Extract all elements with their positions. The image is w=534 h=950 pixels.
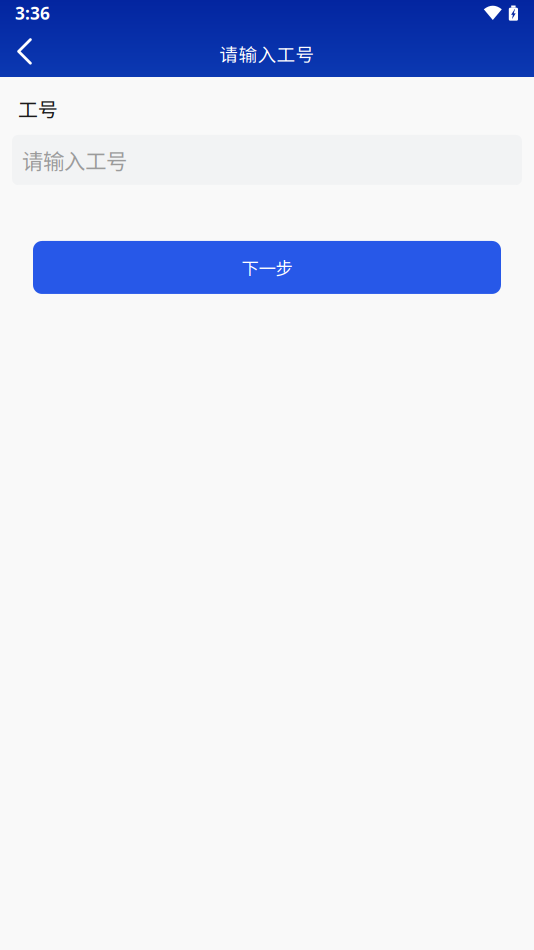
button[interactable]: 下一步: [33, 241, 501, 294]
button[interactable]: 请输入工号: [12, 135, 522, 185]
staticText: 3:36: [15, 1, 50, 24]
staticText: 工号: [18, 94, 58, 123]
staticText: 请输入工号: [219, 40, 314, 67]
staticText: 请输入工号: [22, 144, 127, 175]
staticText: 下一步: [241, 255, 292, 280]
button[interactable]: Back: [0, 30, 47, 77]
